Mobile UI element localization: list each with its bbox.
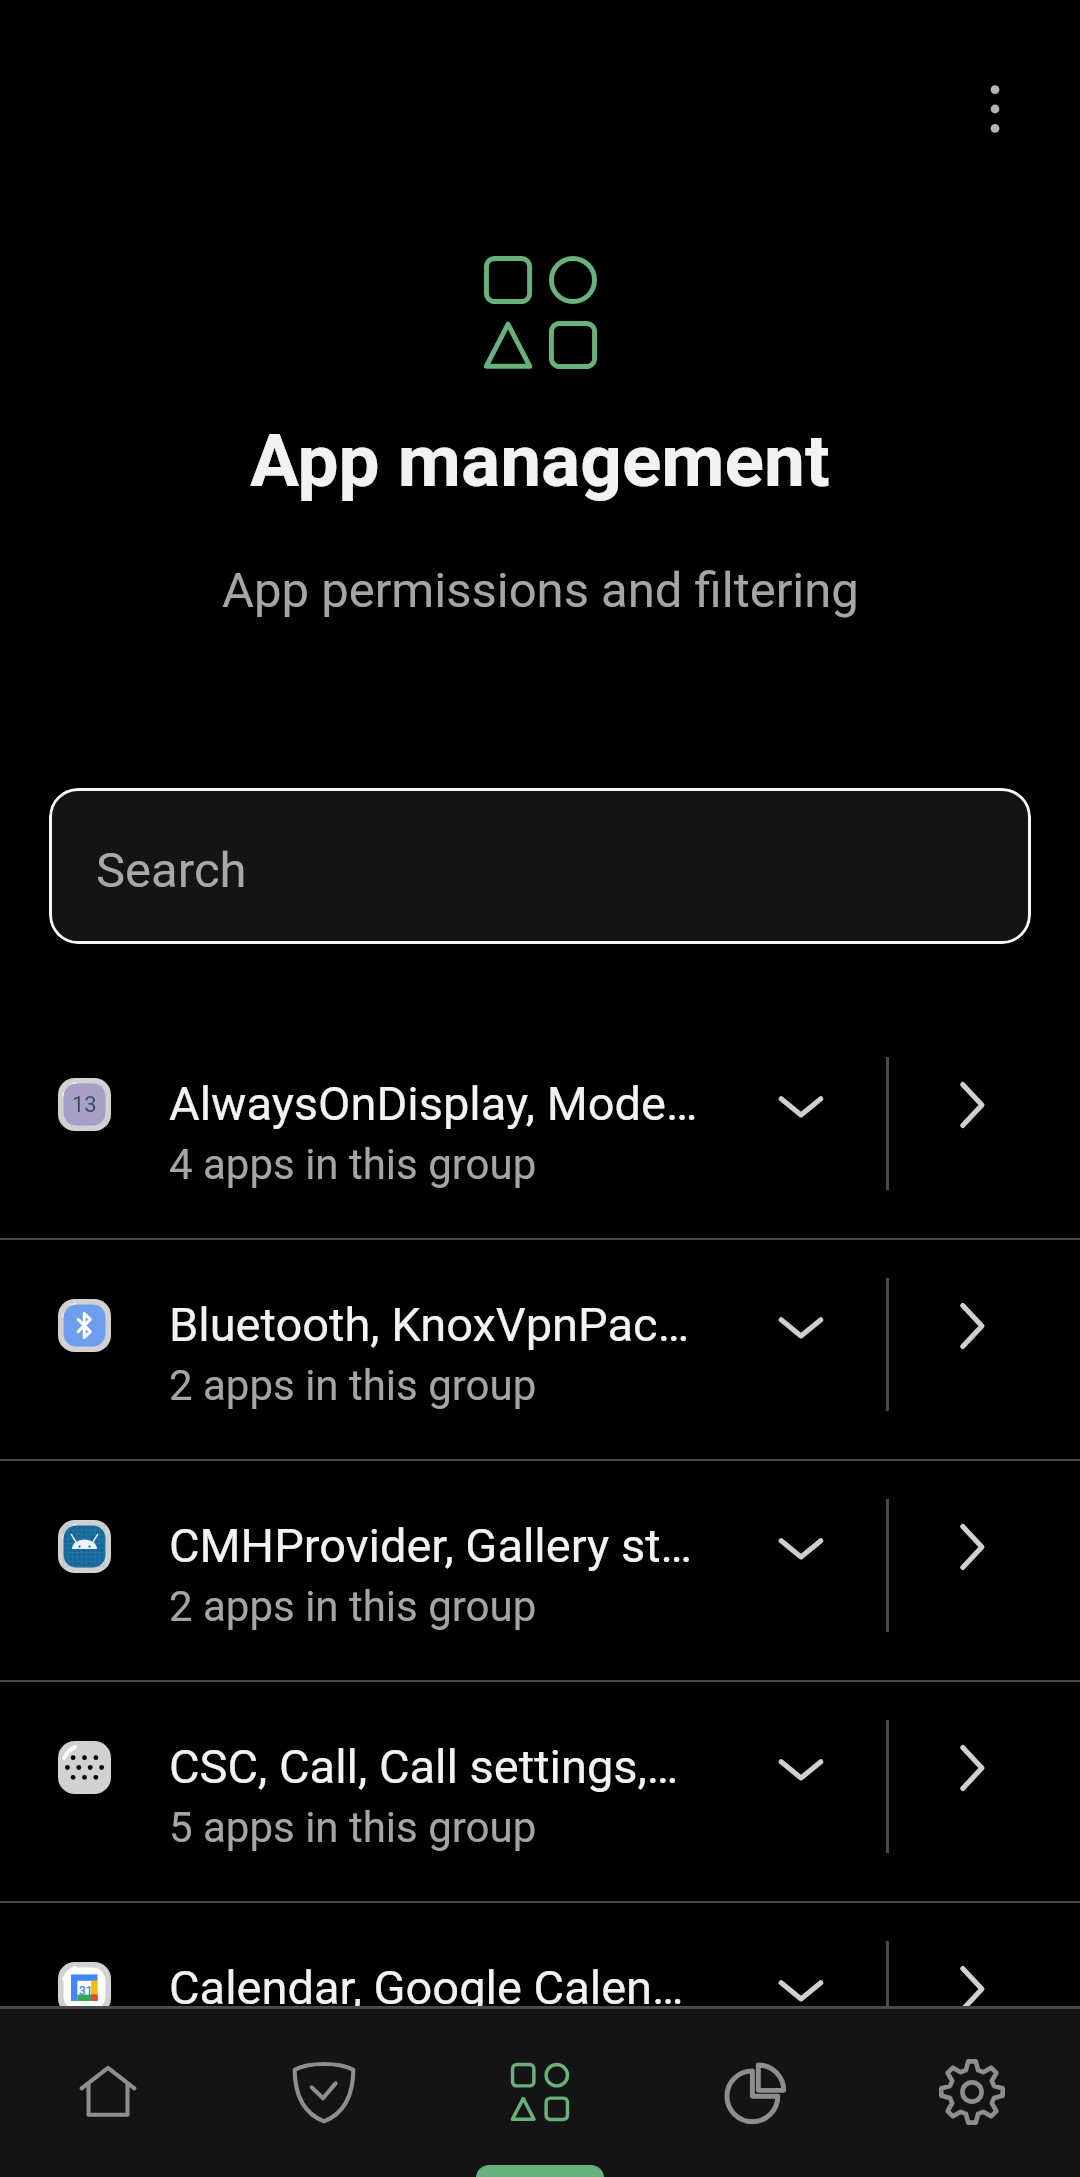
button[interactable]: Open group — [912, 1266, 1032, 1386]
button[interactable]: Expand group — [741, 1045, 861, 1165]
staticText: App permissions and filtering — [222, 562, 859, 619]
staticText: Bluetooth, KnoxVpnPac… — [169, 1297, 690, 1352]
button[interactable]: Search — [49, 788, 1031, 944]
staticText: 2 apps in this group — [169, 1361, 537, 1410]
staticText: App management — [250, 418, 830, 504]
button[interactable]: Bluetooth, KnoxVpnPac… — [0, 1240, 1080, 1459]
staticText: AlwaysOnDisplay, Mode… — [169, 1076, 698, 1131]
staticText: CMHProvider, Gallery st… — [169, 1518, 693, 1573]
button[interactable]: Home — [0, 2009, 216, 2177]
button[interactable]: 13 — [0, 1019, 1080, 1238]
staticText: 31 — [79, 1984, 93, 1998]
staticText: Calendar, Google Calen… — [169, 1960, 684, 2015]
button[interactable]: Expand group — [741, 1708, 861, 1828]
button[interactable]: 31 — [0, 1903, 1080, 2122]
button[interactable]: CMHProvider, Gallery st… — [0, 1461, 1080, 1680]
staticText: 4 apps in this group — [169, 1140, 537, 1189]
button[interactable]: Settings — [864, 2009, 1080, 2177]
staticText: CSC, Call, Call settings,… — [169, 1739, 679, 1794]
button[interactable]: CSC, Call, Call settings,… — [0, 1682, 1080, 1901]
button[interactable]: Expand group — [741, 1487, 861, 1607]
staticText: 2 apps in this group — [169, 1582, 537, 1631]
button[interactable]: Security — [216, 2009, 432, 2177]
staticText: 5 apps in this group — [169, 1803, 537, 1852]
button[interactable]: Open group — [912, 1929, 1032, 2049]
staticText: Search — [96, 842, 247, 899]
button[interactable]: Open group — [912, 1045, 1032, 1165]
button[interactable]: Expand group — [741, 1929, 861, 2049]
button[interactable]: Open group — [912, 1708, 1032, 1828]
button[interactable]: Open group — [912, 1487, 1032, 1607]
button[interactable]: Usage — [648, 2009, 864, 2177]
button[interactable]: Expand group — [741, 1266, 861, 1386]
button[interactable]: App management — [432, 2009, 648, 2177]
button[interactable]: More options — [935, 49, 1055, 169]
staticText: 13 — [72, 1092, 97, 1118]
